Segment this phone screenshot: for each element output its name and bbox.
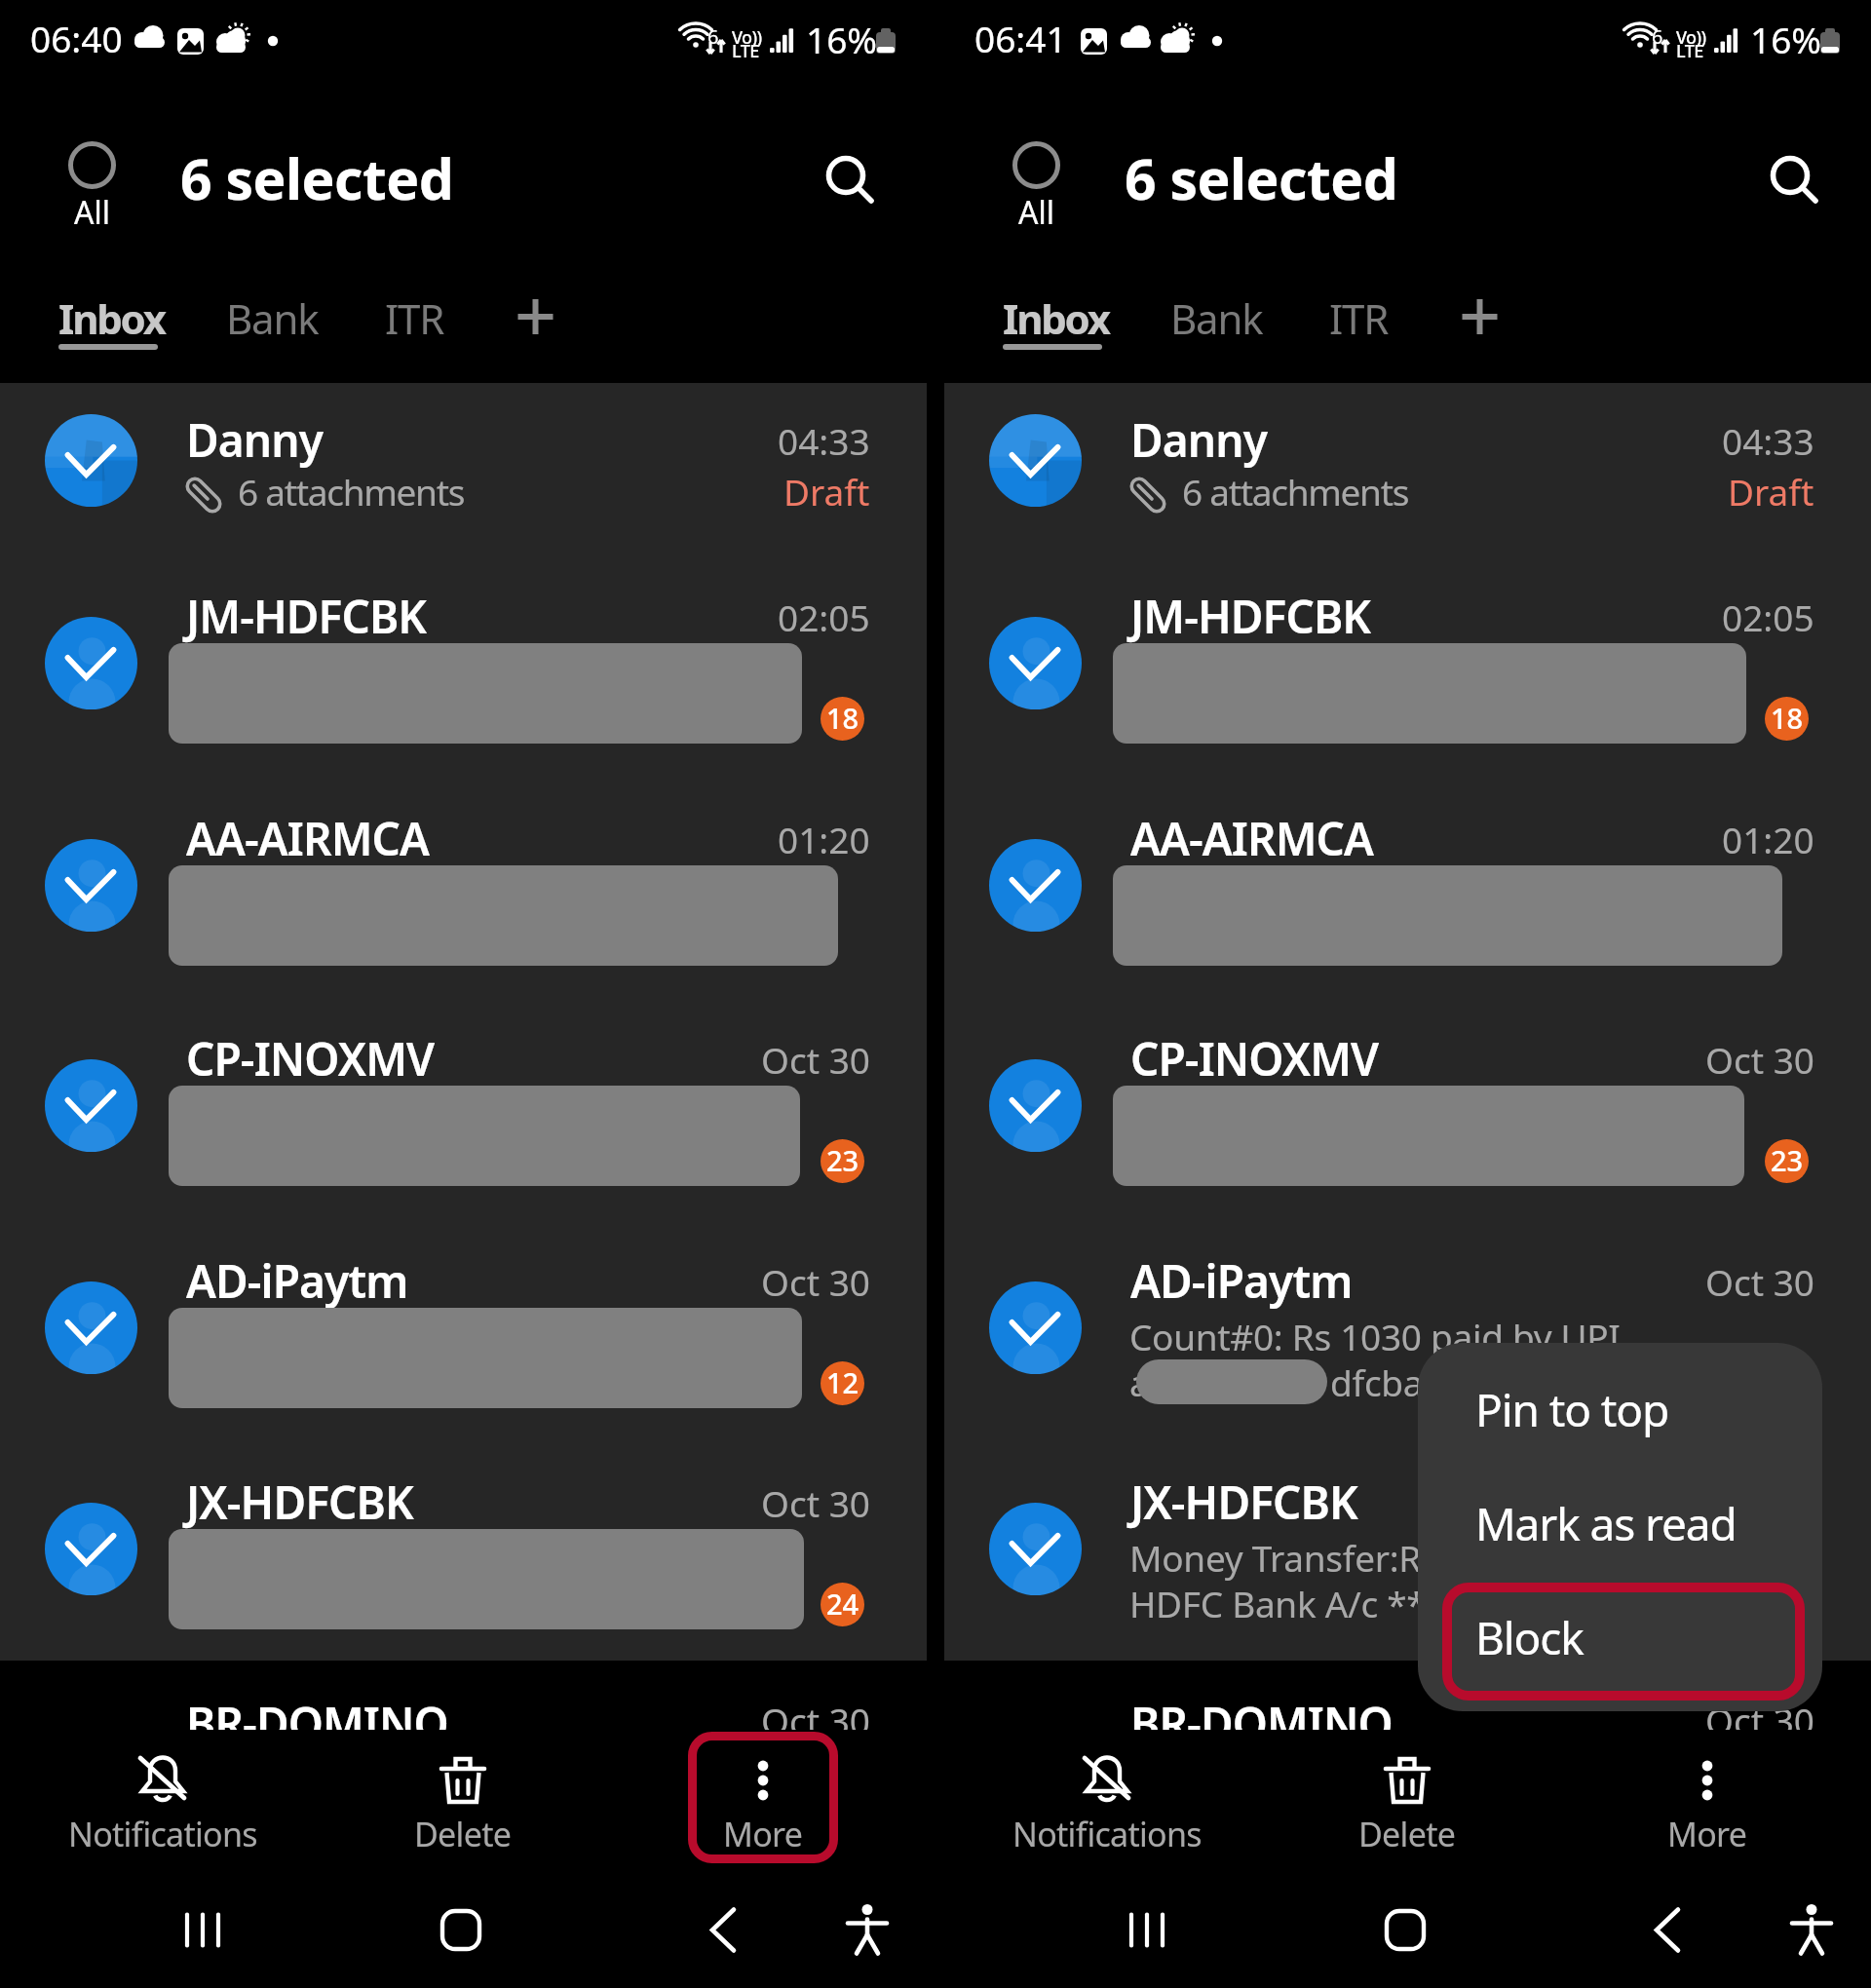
button[interactable] xyxy=(944,383,1871,559)
button[interactable]: Inbox xyxy=(52,275,188,367)
button[interactable] xyxy=(0,1226,927,1447)
staticText: All xyxy=(74,191,110,234)
button[interactable] xyxy=(944,561,1871,783)
staticText: Vo)) xyxy=(732,25,762,50)
button[interactable]: Add tab xyxy=(1421,275,1538,367)
staticText: 16% xyxy=(806,15,878,63)
staticText: JX-HDFCBK xyxy=(186,1472,413,1533)
button[interactable] xyxy=(944,1226,1871,1447)
staticText: Draft xyxy=(1728,467,1814,516)
staticText: 18 xyxy=(826,699,859,737)
staticText: Oct 30 xyxy=(1705,1478,1814,1527)
staticText: JX-HDFCBK xyxy=(1130,1472,1357,1533)
staticText: Inbox xyxy=(58,290,165,346)
staticText: Bank xyxy=(1170,290,1263,346)
staticText: 24 xyxy=(826,1585,859,1623)
staticText: 12 xyxy=(826,1363,859,1401)
staticText: 6 selected xyxy=(1125,140,1398,216)
staticText: Pin to top xyxy=(1475,1379,1669,1440)
staticText: 04:33 xyxy=(1722,416,1814,465)
button[interactable]: Search xyxy=(797,127,895,224)
staticText: More xyxy=(1667,1812,1747,1856)
staticText: Inbox xyxy=(1003,290,1109,346)
button[interactable]: Back xyxy=(663,1872,780,1988)
staticText: 01:20 xyxy=(1722,815,1814,863)
staticText: Vo)) xyxy=(1676,25,1706,50)
staticText: AD-iPaytm xyxy=(186,1250,408,1312)
button[interactable] xyxy=(0,1447,927,1661)
staticText: 6 attachments xyxy=(238,467,465,516)
staticText: JM-HDFCBK xyxy=(1130,586,1371,647)
button[interactable]: Block xyxy=(1418,1571,1822,1685)
staticText: LTE xyxy=(1676,39,1703,63)
button[interactable]: Inbox xyxy=(996,275,1132,367)
button[interactable]: Home xyxy=(1347,1872,1464,1988)
staticText: 6 selected xyxy=(180,140,454,216)
button[interactable]: Select all xyxy=(47,141,136,248)
button[interactable] xyxy=(0,1004,927,1225)
staticText: Count#0: Rs 1030 paid by UPI xyxy=(1129,1312,1621,1360)
button[interactable]: Home xyxy=(402,1872,519,1988)
button[interactable]: Bank xyxy=(184,275,360,367)
button[interactable] xyxy=(944,1004,1871,1225)
staticText: Oct 30 xyxy=(761,1257,870,1306)
staticText: 23 xyxy=(826,1141,859,1179)
button[interactable] xyxy=(0,561,927,783)
staticText: dfcbank ref no 4030 xyxy=(1330,1357,1662,1406)
button[interactable]: Delete xyxy=(313,1732,613,1863)
staticText: Bank xyxy=(226,290,319,346)
staticText: 02:05 xyxy=(778,593,870,641)
button[interactable] xyxy=(944,784,1871,1005)
staticText: BR-DOMINO xyxy=(1130,1693,1393,1754)
staticText: 02:05 xyxy=(1722,593,1814,641)
button[interactable]: Accessibility xyxy=(809,1872,926,1988)
staticText: 6 attachments xyxy=(1182,467,1409,516)
staticText: Oct 30 xyxy=(761,1696,870,1744)
staticText: 16% xyxy=(1750,15,1822,63)
staticText: 06:41 xyxy=(974,14,1067,62)
staticText: LTE xyxy=(732,39,759,63)
staticText: 23 xyxy=(1771,1141,1804,1179)
button[interactable]: Select all xyxy=(991,141,1081,248)
button[interactable]: ITR xyxy=(360,275,469,367)
button[interactable]: More xyxy=(613,1732,913,1863)
staticText: Block xyxy=(1475,1607,1584,1668)
button[interactable]: Mark as read xyxy=(1418,1457,1822,1571)
staticText: 06:40 xyxy=(30,14,123,62)
button[interactable] xyxy=(0,784,927,1005)
button[interactable]: Notifications xyxy=(957,1732,1257,1863)
staticText: HDFC Bank A/c **7712 on 30-10 xyxy=(1129,1579,1662,1627)
button[interactable]: ITR xyxy=(1304,275,1413,367)
staticText: CP-INOXMV xyxy=(186,1028,435,1090)
staticText: Draft xyxy=(783,467,870,516)
button[interactable]: More xyxy=(1557,1732,1857,1863)
staticText: Oct 30 xyxy=(1705,1257,1814,1306)
staticText: ITR xyxy=(1329,290,1389,346)
staticText: CP-INOXMV xyxy=(1130,1028,1379,1090)
button[interactable]: Back xyxy=(1607,1872,1724,1988)
staticText: Danny xyxy=(186,409,323,471)
staticText: 01:20 xyxy=(778,815,870,863)
staticText: Money Transfer:Rs 3000 from xyxy=(1129,1533,1619,1582)
button[interactable] xyxy=(944,1447,1871,1661)
staticText: Oct 30 xyxy=(1705,1035,1814,1084)
staticText: All xyxy=(1018,191,1054,234)
button[interactable]: Add tab xyxy=(477,275,593,367)
button[interactable]: Pin to top xyxy=(1418,1343,1822,1457)
button[interactable]: Bank xyxy=(1128,275,1304,367)
staticText: Notifications xyxy=(1012,1812,1202,1856)
button[interactable]: Notifications xyxy=(13,1732,313,1863)
button[interactable]: Recents xyxy=(144,1872,261,1988)
staticText: ITR xyxy=(385,290,444,346)
staticText: Danny xyxy=(1130,409,1267,471)
button[interactable]: Delete xyxy=(1257,1732,1557,1863)
button[interactable] xyxy=(0,383,927,559)
staticText: 6 xyxy=(707,23,719,50)
staticText: BR-DOMINO xyxy=(186,1693,448,1754)
staticText: AA-AIRMCA xyxy=(186,808,429,869)
button[interactable]: Recents xyxy=(1088,1872,1205,1988)
staticText: AA-AIRMCA xyxy=(1130,808,1373,869)
button[interactable]: Accessibility xyxy=(1753,1872,1870,1988)
staticText: 18 xyxy=(1771,699,1804,737)
button[interactable]: Search xyxy=(1741,127,1839,224)
